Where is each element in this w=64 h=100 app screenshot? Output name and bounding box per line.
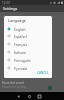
staticText: Русский bbox=[14, 66, 27, 71]
staticText: CANCEL bbox=[37, 71, 49, 75]
button[interactable]: Português bbox=[4, 56, 52, 64]
staticText: Settings bbox=[3, 6, 18, 11]
staticText: 12:30 bbox=[2, 1, 10, 5]
button[interactable]: Home bbox=[24, 92, 34, 100]
button[interactable]: Español bbox=[4, 32, 52, 40]
button[interactable]: Français bbox=[4, 40, 52, 48]
staticText: Español bbox=[14, 34, 27, 39]
staticText: Language bbox=[8, 18, 27, 23]
button[interactable]: English bbox=[4, 25, 52, 33]
button[interactable]: CANCEL bbox=[35, 70, 51, 76]
button[interactable]: Italiano bbox=[4, 48, 52, 56]
button[interactable]: Recent apps bbox=[34, 92, 44, 100]
staticText: Português bbox=[14, 58, 31, 63]
staticText: Italiano bbox=[14, 50, 27, 55]
staticText: Recorded sound bbox=[2, 81, 25, 85]
staticText: Sound on recording bbox=[2, 85, 27, 89]
button[interactable]: Record bbox=[44, 82, 55, 93]
staticText: English bbox=[14, 27, 26, 32]
button[interactable]: Back bbox=[13, 92, 23, 100]
staticText: Français bbox=[14, 42, 28, 47]
button[interactable]: Русский bbox=[4, 64, 52, 72]
